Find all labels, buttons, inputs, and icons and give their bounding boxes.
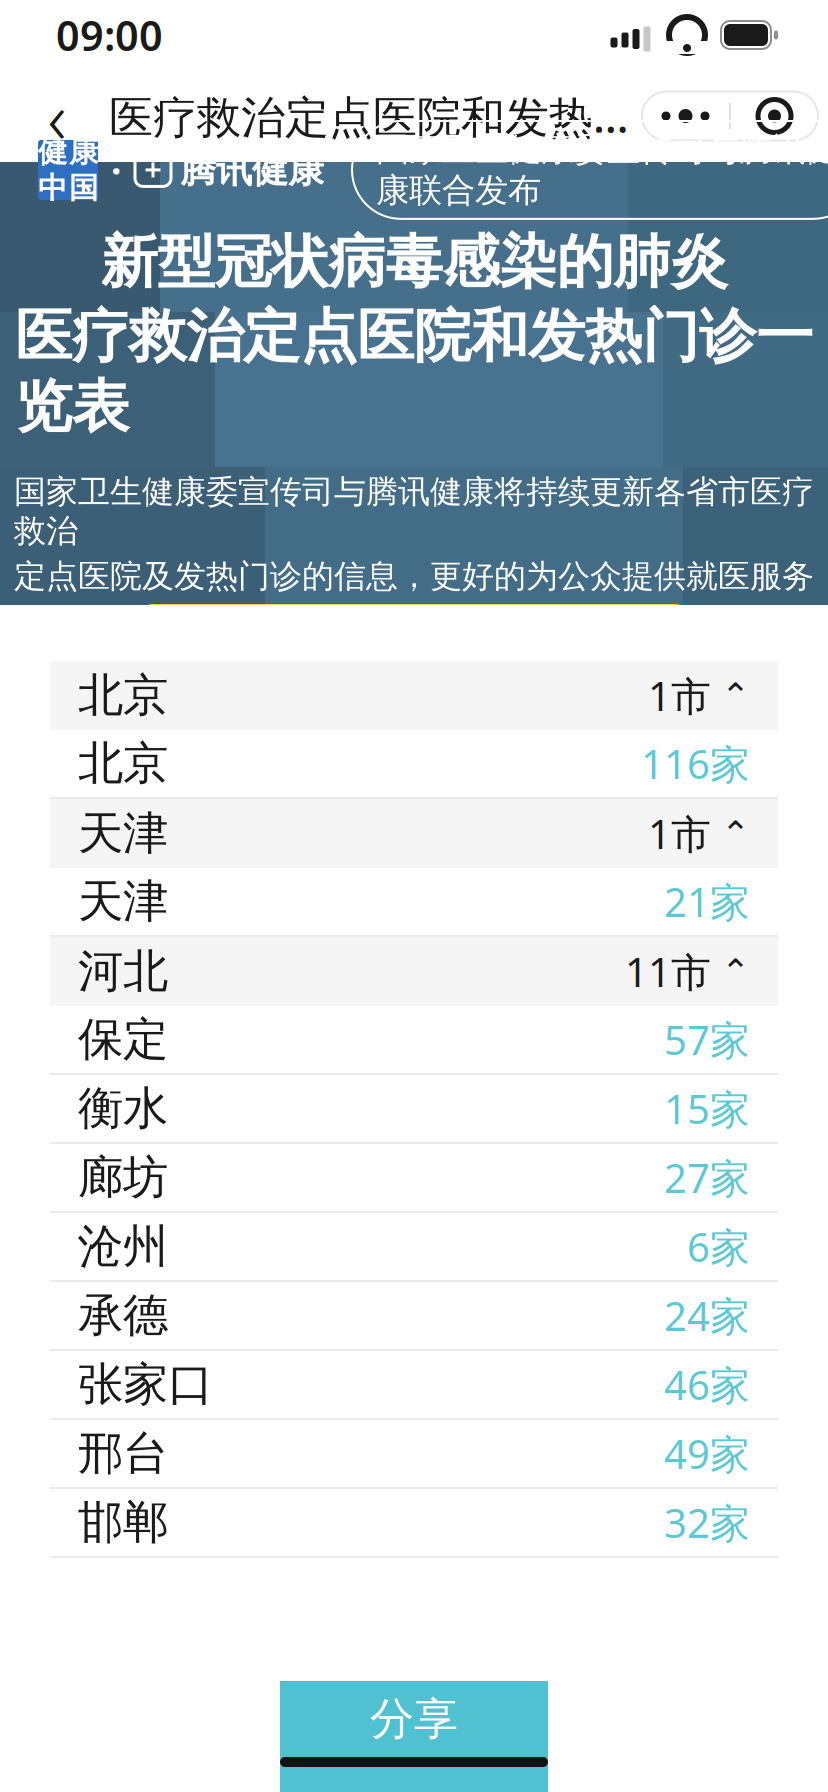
staticText: 医疗救治定点医院和发热… <box>109 87 629 145</box>
staticText: 北京 <box>78 668 168 723</box>
staticText: 116家 <box>641 737 750 790</box>
staticText: 32家 <box>664 1496 750 1549</box>
button[interactable]: 北京 <box>50 661 778 730</box>
button[interactable]: 河北 <box>50 937 778 1006</box>
staticText: 沧州 <box>78 1219 168 1274</box>
staticText: 邢台 <box>78 1426 168 1481</box>
staticText: 57家 <box>664 1013 750 1066</box>
staticText: 张家口 <box>78 1357 213 1412</box>
staticText: 1市 <box>648 807 711 860</box>
staticText: 6家 <box>687 1220 750 1273</box>
button[interactable]: 邯郸 <box>50 1489 778 1558</box>
staticText: 北京 <box>78 736 168 791</box>
staticText: 09:00 <box>56 8 163 62</box>
staticText: 新型冠状病毒感染的肺炎 <box>100 227 727 297</box>
staticText: 承德 <box>78 1288 168 1343</box>
staticText: 邯郸 <box>78 1495 168 1550</box>
staticText: 27家 <box>664 1151 750 1204</box>
button[interactable]: 衡水 <box>50 1075 778 1144</box>
staticText: 15家 <box>664 1082 750 1135</box>
button[interactable]: 北京 <box>50 730 778 799</box>
staticText: 健 <box>38 134 67 170</box>
staticText: 保定 <box>78 1012 168 1067</box>
staticText: 11市 <box>625 945 711 998</box>
staticText: ⌃ <box>721 676 750 715</box>
button[interactable]: 张家口 <box>50 1351 778 1420</box>
button[interactable]: 分享 <box>280 1681 548 1792</box>
staticText: 衡水 <box>78 1081 168 1136</box>
button[interactable]: 沧州 <box>50 1213 778 1282</box>
button[interactable]: 天津 <box>50 868 778 937</box>
staticText: 廊坊 <box>78 1150 168 1205</box>
button[interactable]: 天津 <box>50 799 778 868</box>
staticText: 1市 <box>648 669 711 722</box>
staticText: 中 <box>38 170 67 206</box>
staticText: 国 <box>69 170 98 206</box>
staticText: 国家卫生健康委宣传司与腾讯健康联合发布 <box>376 129 828 211</box>
staticText: 定点医院及发热门诊的信息，更好的为公众提供就医服务 <box>14 557 814 596</box>
staticText: 医疗救治定点医院和发热门诊一览表 <box>15 301 813 442</box>
button[interactable]: Back <box>18 77 96 155</box>
button[interactable]: Close mini program <box>731 91 818 140</box>
button[interactable]: ! <box>144 604 684 655</box>
staticText: › <box>622 598 637 661</box>
button[interactable]: More options <box>642 91 729 140</box>
button[interactable]: 承德 <box>50 1282 778 1351</box>
button[interactable]: 保定 <box>50 1006 778 1075</box>
staticText: 国家卫生健康委宣传司与腾讯健康将持续更新各省市医疗救治 <box>14 472 814 551</box>
staticText: · <box>111 145 121 195</box>
staticText: 天津 <box>78 806 168 861</box>
staticText: 24家 <box>664 1289 750 1342</box>
staticText: ⌃ <box>721 952 750 991</box>
staticText: 46家 <box>664 1358 750 1411</box>
staticText: 河北 <box>78 944 168 999</box>
staticText: ‹ <box>47 68 66 164</box>
staticText: 49家 <box>664 1427 750 1480</box>
staticText: 康 <box>69 134 98 170</box>
button[interactable]: 邢台 <box>50 1420 778 1489</box>
staticText: 腾讯健康 <box>180 148 324 192</box>
staticText: ⌃ <box>721 814 750 853</box>
staticText: 21家 <box>664 875 750 928</box>
staticText: 分享 <box>370 1692 458 1746</box>
button[interactable]: 廊坊 <box>50 1144 778 1213</box>
staticText: 天津 <box>78 874 168 929</box>
